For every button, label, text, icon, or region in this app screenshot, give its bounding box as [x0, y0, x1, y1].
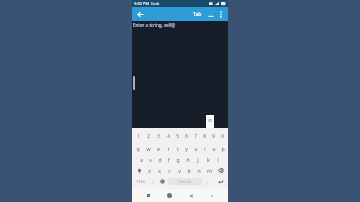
button[interactable]: j: [193, 154, 203, 165]
button[interactable]: x: [154, 165, 164, 176]
button[interactable]: f: [164, 154, 173, 165]
staticText: Enter a string, self@: [133, 22, 176, 28]
button[interactable]: 1: [133, 130, 143, 142]
staticText: g: [176, 156, 180, 163]
staticText: 3: [157, 133, 160, 139]
staticText: u: [194, 145, 198, 152]
staticText: m: [207, 167, 212, 174]
staticText: 7: [194, 133, 197, 139]
button[interactable]: Shift: [133, 165, 145, 176]
staticText: Dvorak: [179, 179, 191, 184]
staticText: h: [186, 156, 190, 163]
button[interactable]: Enter a string, self@: [132, 21, 228, 128]
button[interactable]: i: [200, 142, 209, 154]
staticText: o: [208, 116, 212, 124]
button[interactable]: 9: [209, 130, 218, 142]
staticText: o: [212, 145, 216, 152]
button[interactable]: r: [163, 142, 173, 154]
staticText: s: [149, 156, 152, 163]
button[interactable]: t: [173, 142, 182, 154]
button[interactable]: d: [155, 154, 164, 165]
staticText: d: [158, 156, 162, 163]
button[interactable]: c: [164, 165, 174, 176]
button[interactable]: b: [184, 165, 194, 176]
button[interactable]: u: [191, 142, 200, 154]
button[interactable]: g: [173, 154, 183, 165]
button[interactable]: 0: [218, 130, 227, 142]
button[interactable]: q: [133, 142, 143, 154]
button[interactable]: w: [143, 142, 153, 154]
button[interactable]: 3: [153, 130, 163, 142]
button[interactable]: 8: [200, 130, 209, 142]
staticText: ?123: [136, 179, 145, 184]
staticText: l: [217, 156, 219, 163]
button[interactable]: h: [183, 154, 193, 165]
button[interactable]: k: [203, 154, 213, 165]
staticText: e: [157, 145, 160, 152]
button[interactable]: Back: [135, 9, 146, 20]
staticText: 0: [221, 133, 224, 139]
staticText: y: [185, 145, 188, 152]
staticText: q: [136, 145, 140, 152]
staticText: ,: [152, 178, 154, 185]
staticText: 2: [147, 133, 150, 139]
staticText: 9:02 PM Link: [134, 1, 160, 6]
staticText: p: [221, 145, 225, 152]
staticText: 5: [176, 133, 179, 139]
button[interactable]: s: [146, 154, 155, 165]
staticText: 6: [185, 133, 188, 139]
staticText: w: [146, 145, 151, 152]
button[interactable]: l: [213, 154, 223, 165]
button[interactable]: ,: [148, 176, 157, 187]
staticText: 4: [167, 133, 170, 139]
button[interactable]: Dvorak: [168, 178, 202, 185]
staticText: b: [187, 167, 191, 174]
button[interactable]: 4: [163, 130, 173, 142]
button[interactable]: 2: [143, 130, 153, 142]
button[interactable]: Tab: [191, 10, 204, 19]
button[interactable]: z: [145, 165, 154, 176]
button[interactable]: Recents: [144, 191, 153, 200]
button[interactable]: n: [194, 165, 204, 176]
button[interactable]: m: [204, 165, 214, 176]
button[interactable]: a: [137, 154, 146, 165]
staticText: r: [167, 145, 170, 152]
staticText: i: [204, 145, 206, 152]
staticText: 1: [137, 133, 140, 139]
button[interactable]: v: [174, 165, 184, 176]
button[interactable]: Change language: [157, 176, 167, 187]
button[interactable]: o: [209, 142, 218, 154]
button[interactable]: Hide keyboard: [207, 191, 216, 200]
button[interactable]: More options: [216, 10, 225, 19]
staticText: Tab: [193, 11, 202, 18]
staticText: z: [148, 167, 151, 174]
button[interactable]: 6: [182, 130, 191, 142]
staticText: v: [178, 167, 181, 174]
button[interactable]: Backspace: [214, 165, 227, 176]
button[interactable]: Minimize: [206, 10, 215, 19]
staticText: 8: [203, 133, 206, 139]
staticText: c: [168, 167, 171, 174]
button[interactable]: 7: [191, 130, 200, 142]
staticText: a: [140, 156, 143, 163]
button[interactable]: Back: [186, 191, 195, 200]
button[interactable]: ?123: [133, 176, 148, 187]
staticText: .: [207, 178, 209, 185]
staticText: f: [168, 156, 170, 163]
button[interactable]: p: [218, 142, 227, 154]
button[interactable]: 5: [173, 130, 182, 142]
staticText: n: [197, 167, 201, 174]
button[interactable]: e: [153, 142, 163, 154]
button[interactable]: y: [182, 142, 191, 154]
staticText: k: [207, 156, 210, 163]
staticText: x: [158, 167, 161, 174]
staticText: j: [197, 156, 199, 163]
staticText: 9: [212, 133, 215, 139]
staticText: t: [177, 145, 179, 152]
button[interactable]: Enter: [213, 176, 227, 187]
button[interactable]: .: [203, 176, 213, 187]
button[interactable]: Home: [165, 191, 174, 200]
